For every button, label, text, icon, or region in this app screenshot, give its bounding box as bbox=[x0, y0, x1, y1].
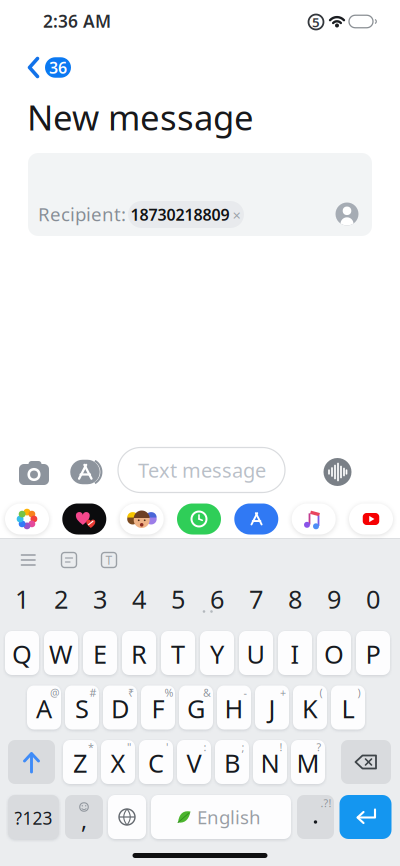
button[interactable]: I bbox=[278, 631, 312, 675]
staticText: A bbox=[36, 692, 52, 725]
button[interactable]: Voice message bbox=[323, 458, 351, 486]
button[interactable]: S bbox=[65, 685, 99, 729]
button[interactable]: T bbox=[161, 631, 195, 675]
staticText: 5 bbox=[312, 13, 320, 31]
staticText: 8 bbox=[288, 582, 302, 616]
button[interactable]: Photos bbox=[5, 503, 49, 534]
staticText: H bbox=[224, 692, 243, 725]
button[interactable]: Space bbox=[151, 795, 291, 839]
button[interactable]: Y bbox=[200, 631, 234, 675]
button[interactable]: App Store bbox=[234, 503, 278, 534]
button[interactable]: J bbox=[255, 685, 289, 729]
button[interactable]: K bbox=[293, 685, 327, 729]
staticText: - bbox=[243, 685, 246, 700]
button[interactable]: A bbox=[27, 685, 61, 729]
staticText: U bbox=[246, 637, 265, 671]
button[interactable]: V bbox=[177, 740, 211, 784]
button[interactable]: Delete bbox=[341, 740, 391, 784]
button[interactable]: U bbox=[239, 631, 273, 675]
button[interactable]: D bbox=[103, 685, 137, 729]
button[interactable]: R bbox=[122, 631, 156, 675]
staticText: % bbox=[164, 685, 173, 700]
button[interactable]: O bbox=[317, 631, 351, 675]
button[interactable]: Next keyboard bbox=[108, 795, 146, 839]
staticText: 6 bbox=[210, 582, 224, 616]
staticText: X bbox=[110, 746, 125, 780]
staticText: Recipient: bbox=[38, 202, 126, 226]
staticText: J bbox=[268, 692, 275, 725]
button[interactable]: Remove recipient 18730218809 bbox=[128, 201, 244, 228]
button[interactable]: ?123 bbox=[8, 795, 59, 839]
button[interactable]: P bbox=[356, 631, 390, 675]
staticText: 18730218809 bbox=[130, 204, 229, 225]
staticText: ' bbox=[166, 740, 168, 754]
button[interactable]: H bbox=[217, 685, 251, 729]
button[interactable]: Comma bbox=[65, 795, 103, 839]
staticText: O bbox=[324, 637, 344, 671]
staticText: W bbox=[49, 637, 73, 671]
staticText: 36 bbox=[49, 57, 67, 78]
button[interactable]: C bbox=[139, 740, 173, 784]
staticText: Text message bbox=[138, 457, 266, 483]
staticText: @ bbox=[50, 685, 60, 700]
staticText: ( bbox=[319, 685, 322, 700]
staticText: N bbox=[260, 746, 279, 780]
staticText: P bbox=[365, 637, 380, 671]
staticText: L bbox=[341, 692, 354, 725]
button[interactable]: Digital Touch bbox=[62, 503, 106, 534]
staticText: 4 bbox=[132, 582, 146, 616]
button[interactable]: X bbox=[101, 740, 135, 784]
staticText: * bbox=[88, 740, 94, 754]
staticText: " bbox=[127, 740, 131, 754]
staticText: C bbox=[148, 746, 164, 780]
staticText: ) bbox=[357, 685, 360, 700]
button[interactable]: iMessage apps bbox=[68, 457, 108, 487]
staticText: 7 bbox=[249, 582, 263, 616]
button[interactable]: G bbox=[179, 685, 213, 729]
button[interactable]: Clipboard bbox=[61, 552, 76, 567]
staticText: 1 bbox=[15, 582, 29, 616]
button[interactable]: Keyboard menu bbox=[21, 554, 35, 566]
button[interactable]: Music bbox=[292, 503, 336, 534]
staticText: 5 bbox=[171, 582, 185, 616]
button[interactable]: W bbox=[44, 631, 78, 675]
staticText: Y bbox=[210, 637, 224, 671]
button[interactable]: N bbox=[253, 740, 287, 784]
staticText: ! bbox=[279, 740, 282, 754]
staticText: I bbox=[290, 637, 299, 671]
staticText: Q bbox=[12, 637, 32, 671]
staticText: # bbox=[89, 685, 96, 700]
button[interactable]: Back bbox=[20, 57, 80, 77]
button[interactable]: Period bbox=[297, 795, 334, 839]
button[interactable]: Add contact bbox=[335, 202, 358, 225]
staticText: New message bbox=[27, 94, 254, 140]
staticText: .?! bbox=[320, 796, 331, 810]
button[interactable]: M bbox=[291, 740, 325, 784]
button[interactable]: B bbox=[215, 740, 249, 784]
staticText: T bbox=[171, 637, 185, 671]
staticText: B bbox=[224, 746, 240, 780]
staticText: K bbox=[302, 692, 318, 725]
staticText: ; bbox=[241, 740, 244, 754]
button[interactable]: L bbox=[331, 685, 365, 729]
staticText: ?123 bbox=[14, 806, 52, 829]
staticText: G bbox=[187, 692, 205, 725]
button[interactable]: Return bbox=[339, 795, 391, 839]
button[interactable]: Z bbox=[63, 740, 97, 784]
staticText: 0 bbox=[366, 582, 380, 616]
button[interactable]: Text editing bbox=[101, 552, 116, 567]
button[interactable]: E bbox=[83, 631, 117, 675]
staticText: S bbox=[75, 692, 89, 725]
button[interactable]: Q bbox=[5, 631, 39, 675]
button[interactable]: F bbox=[141, 685, 175, 729]
button[interactable]: Camera bbox=[16, 458, 52, 488]
staticText: , bbox=[81, 805, 87, 835]
button[interactable]: YouTube bbox=[349, 503, 393, 534]
staticText: 2:36 AM bbox=[43, 9, 111, 32]
staticText: 3 bbox=[93, 582, 107, 616]
button[interactable]: Shift bbox=[8, 740, 55, 784]
button[interactable]: Recently used apps bbox=[177, 503, 221, 534]
button[interactable]: Text message bbox=[118, 447, 285, 492]
button[interactable]: Memoji Stickers bbox=[120, 503, 164, 534]
staticText: ₹ bbox=[128, 685, 134, 700]
